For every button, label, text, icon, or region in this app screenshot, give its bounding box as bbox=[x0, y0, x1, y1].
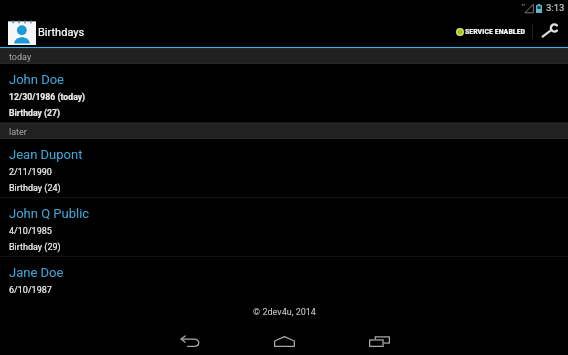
staticText: 4/10/1985 bbox=[9, 226, 52, 237]
staticText: today bbox=[9, 52, 32, 63]
staticText: SERVICE ENABLED bbox=[465, 27, 526, 36]
staticText: Birthdays bbox=[38, 26, 85, 39]
button[interactable]: John Doe bbox=[0, 64, 568, 123]
button[interactable]: Back bbox=[142, 326, 237, 355]
staticText: © 2dev4u, 2014 bbox=[253, 307, 316, 318]
staticText: 3:13 bbox=[546, 2, 565, 13]
staticText: Jean Dupont bbox=[9, 147, 83, 162]
staticText: 6/10/1987 bbox=[9, 285, 52, 296]
button[interactable]: Settings bbox=[535, 15, 565, 46]
staticText: Birthday (29) bbox=[9, 242, 61, 253]
staticText: John Doe bbox=[9, 72, 64, 87]
staticText: Birthday (24) bbox=[9, 183, 61, 194]
staticText: Jane Doe bbox=[9, 265, 64, 280]
button[interactable]: Jean Dupont bbox=[0, 139, 568, 198]
staticText: John Q Public bbox=[9, 206, 90, 221]
staticText: 12/30/1986 (today) bbox=[9, 92, 86, 102]
button[interactable]: Home bbox=[237, 326, 332, 355]
staticText: later bbox=[9, 127, 27, 138]
button[interactable]: Jane Doe bbox=[0, 257, 568, 299]
button[interactable]: Recent apps bbox=[332, 326, 427, 355]
staticText: 2/11/1990 bbox=[9, 167, 52, 178]
staticText: Birthday (27) bbox=[9, 108, 61, 118]
button[interactable]: SERVICE ENABLED bbox=[451, 21, 531, 42]
button[interactable]: John Q Public bbox=[0, 198, 568, 257]
